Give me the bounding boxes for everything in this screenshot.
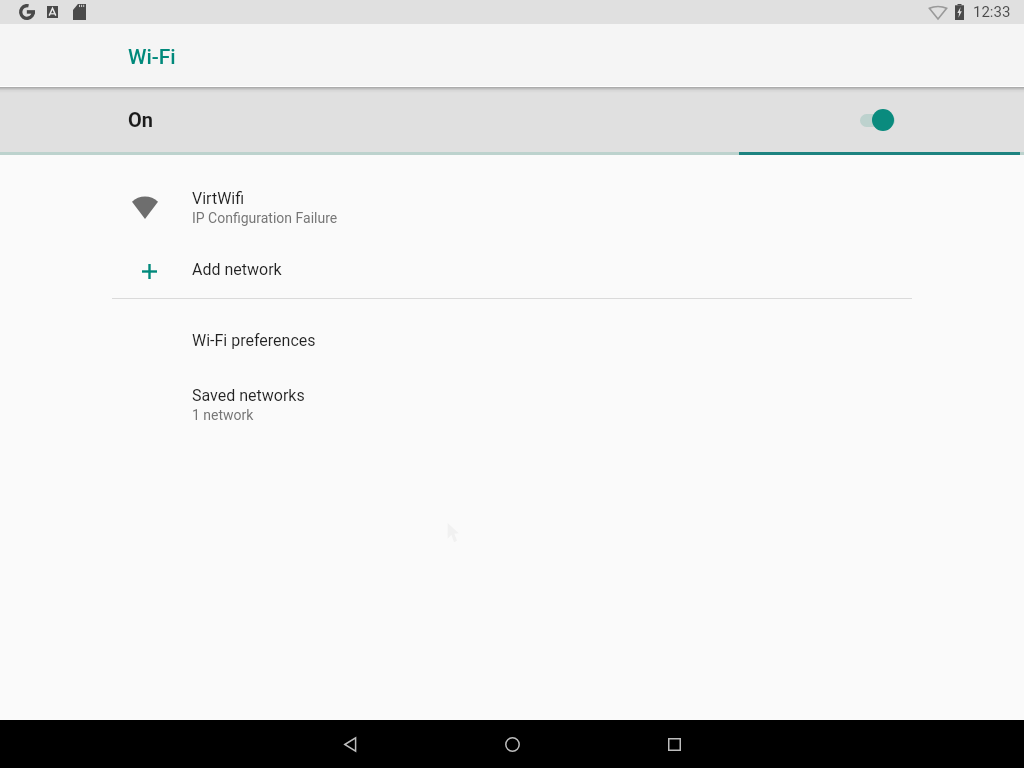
- staticText: 1 network: [192, 407, 254, 423]
- staticText: Wi-Fi preferences: [192, 331, 316, 350]
- button[interactable]: Back: [330, 724, 370, 764]
- staticText: 12:33: [973, 3, 1011, 21]
- button[interactable]: Wi-Fi preferences: [0, 320, 1024, 372]
- staticText: VirtWifi: [192, 189, 245, 208]
- button[interactable]: Saved networks: [0, 372, 1024, 432]
- staticText: On: [128, 108, 154, 131]
- staticText: Add network: [192, 260, 282, 279]
- button[interactable]: Recent apps: [654, 724, 694, 764]
- button[interactable]: Add network: [0, 245, 1024, 297]
- button[interactable]: VirtWifi: [0, 177, 1024, 236]
- staticText: Wi-Fi: [128, 45, 176, 70]
- staticText: IP Configuration Failure: [192, 210, 338, 226]
- button[interactable]: On: [0, 93, 1024, 152]
- staticText: Saved networks: [192, 386, 305, 405]
- button[interactable]: Home: [492, 724, 532, 764]
